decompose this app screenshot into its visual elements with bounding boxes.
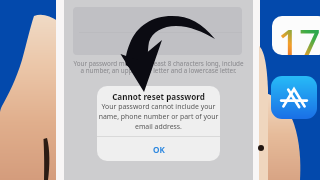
staticText: OK xyxy=(153,144,165,155)
staticText: Your password cannot include your name, … xyxy=(97,102,220,131)
button[interactable]: OK xyxy=(97,137,220,161)
button[interactable]: iOS 17 xyxy=(272,16,320,55)
staticText: Your password must be at least 8 charact… xyxy=(64,59,253,75)
staticText: Cannot reset password xyxy=(97,91,220,102)
button[interactable]: App Store xyxy=(271,76,317,119)
staticText: 17 xyxy=(278,16,320,55)
